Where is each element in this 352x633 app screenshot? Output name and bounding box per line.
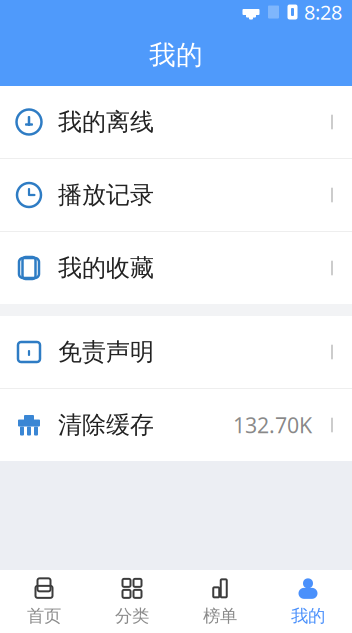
button[interactable]: 清除缓存 (0, 389, 352, 461)
button[interactable]: 免责声明 (0, 316, 352, 388)
staticText: 我的离线 (58, 107, 154, 137)
button[interactable]: 播放记录 (0, 159, 352, 231)
staticText: 我的 (149, 39, 203, 71)
staticText: 132.70K (233, 411, 312, 439)
button[interactable]: 首页 (0, 570, 88, 633)
button[interactable]: 我的收藏 (0, 232, 352, 304)
staticText: 分类 (115, 605, 149, 627)
staticText: 我的 (291, 605, 325, 627)
button[interactable]: 我的离线 (0, 86, 352, 158)
button[interactable]: 分类 (88, 570, 176, 633)
staticText: 免责声明 (58, 337, 154, 367)
staticText: 清除缓存 (58, 410, 154, 440)
button[interactable]: 我的 (264, 570, 352, 633)
staticText: 榜单 (203, 605, 237, 627)
staticText: 8:28 (304, 0, 342, 25)
staticText: 我的收藏 (58, 253, 154, 283)
button[interactable]: 榜单 (176, 570, 264, 633)
staticText: 播放记录 (58, 180, 154, 210)
staticText: 首页 (27, 605, 61, 627)
